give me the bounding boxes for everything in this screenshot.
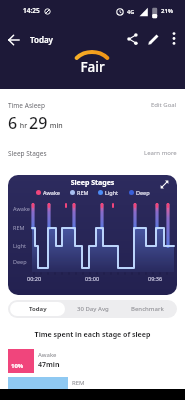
button[interactable]: 30 Day Avg bbox=[65, 302, 120, 316]
staticText: 4G bbox=[127, 8, 135, 15]
button[interactable] bbox=[164, 29, 183, 48]
staticText: 05:00 bbox=[85, 275, 100, 282]
staticText: Awake bbox=[43, 189, 60, 196]
button[interactable]: Edit Goal bbox=[151, 101, 177, 109]
button[interactable] bbox=[122, 29, 142, 49]
staticText: REM bbox=[13, 224, 25, 231]
staticText: 10% bbox=[11, 362, 24, 370]
staticText: 47min bbox=[38, 360, 60, 370]
button[interactable] bbox=[144, 29, 164, 49]
staticText: REM bbox=[72, 379, 85, 387]
staticText: hr bbox=[18, 121, 29, 131]
staticText: 29 bbox=[29, 112, 48, 134]
staticText: Deep bbox=[13, 258, 27, 265]
staticText: 30 Day Avg bbox=[77, 305, 109, 313]
staticText: 21% bbox=[161, 7, 174, 15]
staticText: Awake bbox=[38, 351, 57, 359]
staticText: Light bbox=[105, 189, 119, 196]
staticText: 1h 22min bbox=[72, 388, 104, 398]
staticText: Time Asleep bbox=[8, 101, 45, 110]
staticText: Awake bbox=[13, 205, 30, 212]
staticText: Sleep Stages bbox=[8, 178, 177, 188]
staticText: Sleep Stages bbox=[8, 149, 47, 158]
button[interactable]: Today bbox=[10, 302, 65, 316]
button[interactable]: REM bbox=[8, 377, 185, 400]
staticText: Learn more bbox=[144, 149, 177, 157]
staticText: 00:20 bbox=[27, 275, 42, 282]
staticText: Edit Goal bbox=[151, 101, 177, 109]
button[interactable]: 10% bbox=[8, 349, 185, 373]
staticText: Today bbox=[30, 34, 53, 45]
staticText: REM bbox=[77, 189, 89, 196]
staticText: Benchmark bbox=[131, 305, 164, 313]
staticText: Time spent in each stage of sleep bbox=[0, 330, 185, 340]
button[interactable]: Learn more bbox=[144, 149, 177, 157]
staticText: 14:25 bbox=[23, 6, 40, 15]
staticText: Light bbox=[13, 242, 27, 249]
staticText: min bbox=[48, 121, 63, 131]
button[interactable]: Benchmark bbox=[120, 302, 175, 316]
staticText: 6 bbox=[8, 112, 18, 134]
button[interactable]: Sleep Stages bbox=[8, 175, 177, 295]
button[interactable] bbox=[3, 29, 25, 51]
staticText: Today bbox=[29, 305, 47, 313]
staticText: Fair bbox=[0, 58, 185, 76]
staticText: 09:36 bbox=[148, 275, 163, 282]
staticText: Deep bbox=[136, 189, 150, 196]
